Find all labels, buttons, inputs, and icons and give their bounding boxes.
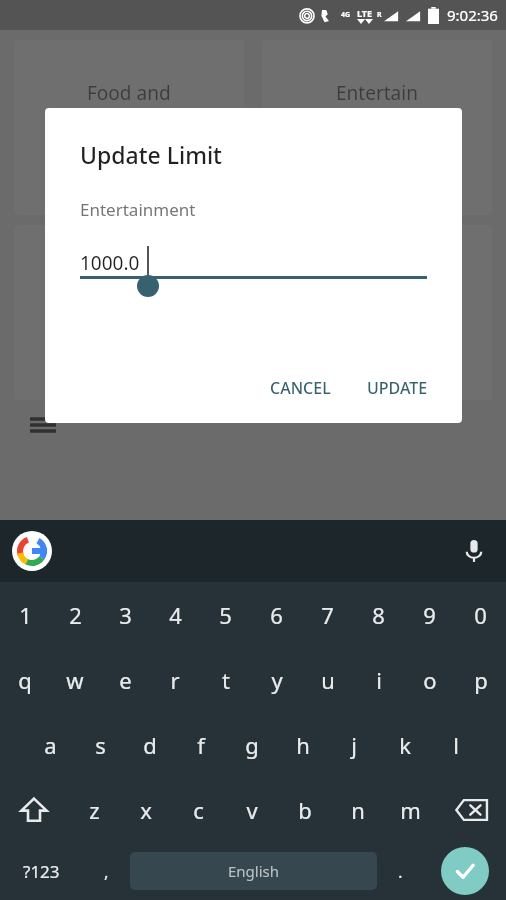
button[interactable]: d <box>125 712 175 777</box>
staticText: x <box>140 795 152 825</box>
button[interactable]: b <box>278 777 331 842</box>
staticText: o <box>423 665 437 695</box>
button[interactable]: z <box>68 777 120 842</box>
staticText: l <box>453 730 459 760</box>
staticText: e <box>119 665 132 695</box>
staticText: w <box>66 665 84 695</box>
button[interactable]: Menu <box>26 409 60 443</box>
staticText: UPDATE <box>367 377 428 399</box>
button[interactable]: h <box>277 712 328 777</box>
button[interactable]: 6 <box>251 582 302 647</box>
button[interactable]: i <box>353 647 404 712</box>
staticText: R <box>377 10 382 20</box>
staticText: j <box>351 730 357 760</box>
staticText: f <box>197 730 205 760</box>
button[interactable]: j <box>328 712 379 777</box>
button[interactable]: 4 <box>150 582 200 647</box>
staticText: i <box>376 665 382 695</box>
button[interactable]: c <box>172 777 225 842</box>
staticText: z <box>89 795 100 825</box>
staticText: 4G <box>341 10 351 20</box>
button[interactable]: 3 <box>100 582 150 647</box>
button[interactable]: . <box>377 842 424 900</box>
staticText: 2 <box>69 600 82 630</box>
button[interactable]: m <box>384 777 437 842</box>
staticText: p <box>474 665 488 695</box>
button[interactable]: v <box>225 777 278 842</box>
button[interactable]: Shift <box>0 777 68 842</box>
staticText: s <box>95 730 106 760</box>
button[interactable]: Enter <box>424 842 506 900</box>
button[interactable]: Food and <box>14 40 244 215</box>
button[interactable]: p <box>455 647 506 712</box>
button[interactable]: w <box>50 647 100 712</box>
button[interactable]: t <box>200 647 251 712</box>
staticText: d <box>143 730 157 760</box>
button[interactable]: f <box>175 712 226 777</box>
button[interactable]: q <box>0 647 50 712</box>
staticText: c <box>193 795 204 825</box>
button[interactable]: s <box>75 712 125 777</box>
button[interactable]: 8 <box>353 582 404 647</box>
staticText: u <box>321 665 335 695</box>
button[interactable]: CANCEL <box>262 369 339 407</box>
staticText: k <box>399 730 411 760</box>
staticText: ?123 <box>23 860 60 883</box>
staticText: t <box>222 665 230 695</box>
staticText: 4 <box>169 600 182 630</box>
staticText: 7 <box>321 600 334 630</box>
button[interactable] <box>14 225 244 400</box>
staticText: m <box>400 795 421 825</box>
staticText: , <box>104 860 109 883</box>
button[interactable]: ?123 <box>0 842 83 900</box>
staticText: q <box>18 665 32 695</box>
staticText: b <box>298 795 312 825</box>
button[interactable]: UPDATE <box>359 369 436 407</box>
button[interactable]: n <box>331 777 384 842</box>
button[interactable]: 0 <box>455 582 506 647</box>
button[interactable]: k <box>379 712 430 777</box>
button[interactable]: English <box>130 852 377 890</box>
button[interactable]: r <box>150 647 200 712</box>
button[interactable]: Voice input <box>456 533 492 569</box>
button[interactable]: a <box>25 712 75 777</box>
staticText: r <box>170 665 180 695</box>
button[interactable]: , <box>83 842 130 900</box>
button[interactable]: 5 <box>200 582 251 647</box>
button[interactable]: 1 <box>0 582 50 647</box>
button[interactable]: Entertain <box>262 40 492 215</box>
button[interactable]: 7 <box>302 582 353 647</box>
staticText: CANCEL <box>270 377 331 399</box>
staticText: y <box>271 665 283 695</box>
button[interactable] <box>262 225 492 400</box>
button[interactable]: g <box>226 712 277 777</box>
staticText: 1 <box>19 600 32 630</box>
staticText: 0 <box>474 600 487 630</box>
staticText: v <box>246 795 258 825</box>
staticText: 9 <box>423 600 436 630</box>
staticText: h <box>296 730 310 760</box>
button[interactable]: e <box>100 647 150 712</box>
staticText: Entertain <box>336 80 418 106</box>
button[interactable]: o <box>404 647 455 712</box>
staticText: Update Limit <box>80 139 222 170</box>
staticText: 8 <box>372 600 385 630</box>
staticText: n <box>351 795 365 825</box>
button[interactable]: u <box>302 647 353 712</box>
staticText: 6 <box>270 600 283 630</box>
button[interactable]: x <box>120 777 172 842</box>
staticText: LTE <box>357 7 373 19</box>
staticText: 1000.0 <box>80 250 140 276</box>
staticText: English <box>228 861 280 881</box>
staticText: g <box>245 730 259 760</box>
staticText: Entertainment <box>80 198 196 221</box>
staticText: 9:02:36 <box>447 5 498 25</box>
staticText: 3 <box>119 600 132 630</box>
button[interactable]: y <box>251 647 302 712</box>
button[interactable]: Google <box>11 530 53 572</box>
staticText: a <box>44 730 57 760</box>
button[interactable]: 9 <box>404 582 455 647</box>
button[interactable]: 2 <box>50 582 100 647</box>
button[interactable]: Backspace <box>437 777 506 842</box>
button[interactable]: l <box>430 712 481 777</box>
